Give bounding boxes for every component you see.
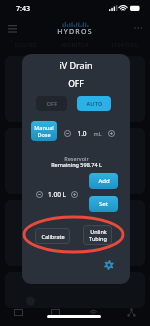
button[interactable]: Calibrate (35, 228, 70, 244)
button[interactable]: Settings (104, 260, 114, 270)
staticText: Dose (37, 131, 51, 138)
staticText: LIGHTING (111, 42, 139, 49)
button[interactable]: Add (89, 173, 118, 189)
staticText: iV Drain (59, 59, 93, 71)
button[interactable]: More options (130, 20, 146, 36)
staticText: 7:43 (16, 4, 30, 14)
staticText: AUTO (86, 100, 103, 107)
staticText: OFF (68, 78, 84, 90)
staticText: OFF (46, 100, 58, 107)
button[interactable]: Wifi (74, 305, 112, 319)
button[interactable]: Decrease (36, 191, 43, 198)
button[interactable]: OFF (36, 96, 67, 111)
staticText: Reservoir (64, 155, 89, 162)
button[interactable]: AUTO (77, 96, 111, 111)
staticText: Set (99, 200, 108, 208)
button[interactable]: Unlink (83, 225, 112, 245)
button[interactable]: Share (112, 305, 150, 319)
button[interactable]: Increase (71, 191, 78, 198)
staticText: Tubing (89, 235, 107, 242)
staticText: mL (93, 130, 102, 137)
staticText: Unlink (90, 228, 107, 235)
staticText: HYDROS (57, 27, 93, 37)
button[interactable]: Increase (108, 130, 115, 137)
staticText: Remaining 598.74 L (51, 161, 102, 168)
staticText: MONITOR (62, 42, 89, 49)
staticText: Calibrate (41, 233, 65, 240)
staticText: Manual (34, 124, 54, 131)
button[interactable]: Set (89, 196, 118, 212)
staticText: Add (98, 177, 110, 185)
button[interactable]: Menu (3, 19, 21, 37)
staticText: 1.00 L (48, 190, 66, 199)
staticText: 1.0 (77, 129, 87, 138)
button[interactable]: Dosing (0, 305, 37, 319)
button[interactable]: Manual (31, 121, 57, 141)
button[interactable]: Monitor (37, 305, 74, 319)
staticText: DOSING (14, 42, 37, 49)
button[interactable]: Decrease (64, 130, 71, 137)
